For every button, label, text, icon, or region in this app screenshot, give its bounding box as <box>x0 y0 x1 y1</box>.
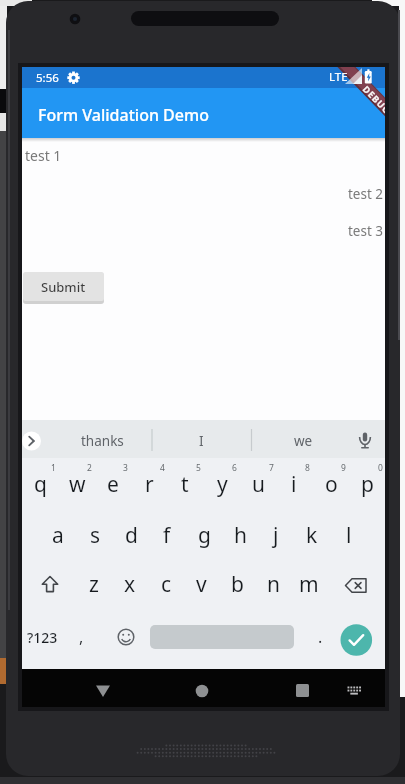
button[interactable]: b <box>220 562 254 606</box>
staticText: v <box>196 570 207 599</box>
staticText: DEBUG <box>361 83 385 116</box>
button[interactable] <box>281 669 325 707</box>
button[interactable]: d <box>114 513 148 557</box>
staticText: c <box>161 570 172 599</box>
button[interactable] <box>349 424 381 456</box>
staticText: 2 <box>87 462 92 474</box>
staticText: w <box>69 470 86 499</box>
staticText: I <box>199 432 204 450</box>
button[interactable] <box>340 624 372 656</box>
staticText: b <box>231 570 244 599</box>
button[interactable] <box>30 564 64 608</box>
staticText: . <box>318 626 323 648</box>
button[interactable]: l <box>332 513 366 557</box>
staticText: d <box>125 521 138 550</box>
staticText: 7 <box>269 462 274 474</box>
button[interactable]: n <box>256 562 290 606</box>
staticText: Submit <box>41 278 86 296</box>
staticText: test 1 <box>25 146 62 165</box>
button[interactable]: Submit <box>23 272 104 301</box>
button[interactable]: , <box>64 615 98 659</box>
staticText: , <box>79 626 84 648</box>
staticText: 4 <box>160 462 165 474</box>
button[interactable]: i <box>277 462 311 506</box>
staticText: u <box>252 470 265 499</box>
staticText: x <box>124 570 136 599</box>
button[interactable]: t <box>168 462 202 506</box>
button[interactable] <box>339 564 373 608</box>
button[interactable]: j <box>259 513 293 557</box>
button[interactable]: we <box>243 426 363 456</box>
button[interactable]: o <box>314 462 348 506</box>
button[interactable]: ?123 <box>22 622 102 652</box>
button[interactable] <box>109 615 143 659</box>
button[interactable]: k <box>295 513 329 557</box>
staticText: Form Validation Demo <box>38 104 209 126</box>
staticText: a <box>52 521 64 550</box>
staticText: m <box>299 570 319 599</box>
button[interactable]: p <box>350 462 384 506</box>
button[interactable] <box>336 671 372 707</box>
button[interactable]: e <box>96 462 130 506</box>
button[interactable]: r <box>132 462 166 506</box>
staticText: 5 <box>196 462 201 474</box>
staticText: 6 <box>232 462 237 474</box>
button[interactable]: y <box>205 462 239 506</box>
staticText: 9 <box>341 462 346 474</box>
staticText: test 3 <box>348 222 384 240</box>
button[interactable]: c <box>149 562 183 606</box>
button[interactable]: a <box>41 513 75 557</box>
button[interactable]: v <box>184 562 218 606</box>
button[interactable]: u <box>241 462 275 506</box>
staticText: z <box>89 570 99 599</box>
button[interactable]: . <box>303 615 337 659</box>
staticText: s <box>90 521 101 550</box>
staticText: r <box>145 470 154 499</box>
staticText: 3 <box>123 462 128 474</box>
staticText: test 2 <box>348 185 384 203</box>
staticText: 0 <box>378 462 383 474</box>
button[interactable]: h <box>223 513 257 557</box>
staticText: 8 <box>305 462 310 474</box>
button[interactable]: x <box>113 562 147 606</box>
staticText: l <box>346 521 352 550</box>
staticText: ?123 <box>27 628 58 647</box>
staticText: t <box>181 470 189 499</box>
button[interactable]: I <box>141 426 261 456</box>
button[interactable]: g <box>187 513 221 557</box>
button[interactable]: s <box>78 513 112 557</box>
button[interactable]: q <box>23 462 57 506</box>
staticText: i <box>291 470 297 499</box>
button[interactable] <box>180 669 224 707</box>
staticText: e <box>107 470 119 499</box>
staticText: 5:56 <box>36 70 59 86</box>
staticText: we <box>294 432 313 450</box>
staticText: j <box>273 521 279 550</box>
button[interactable]: z <box>77 562 111 606</box>
staticText: 1 <box>51 462 56 474</box>
staticText: y <box>217 470 228 499</box>
button[interactable]: m <box>292 562 326 606</box>
staticText: g <box>198 521 211 550</box>
staticText: q <box>34 470 47 499</box>
button[interactable] <box>150 625 294 649</box>
button[interactable] <box>79 669 123 707</box>
staticText: o <box>325 470 338 499</box>
staticText: h <box>234 521 247 550</box>
staticText: n <box>267 570 280 599</box>
button[interactable]: w <box>60 462 94 506</box>
staticText: f <box>163 521 171 550</box>
staticText: thanks <box>81 432 124 450</box>
staticText: p <box>361 470 374 499</box>
button[interactable]: thanks <box>42 426 162 456</box>
button[interactable]: f <box>150 513 184 557</box>
staticText: LTE <box>329 69 348 85</box>
staticText: k <box>306 521 318 550</box>
